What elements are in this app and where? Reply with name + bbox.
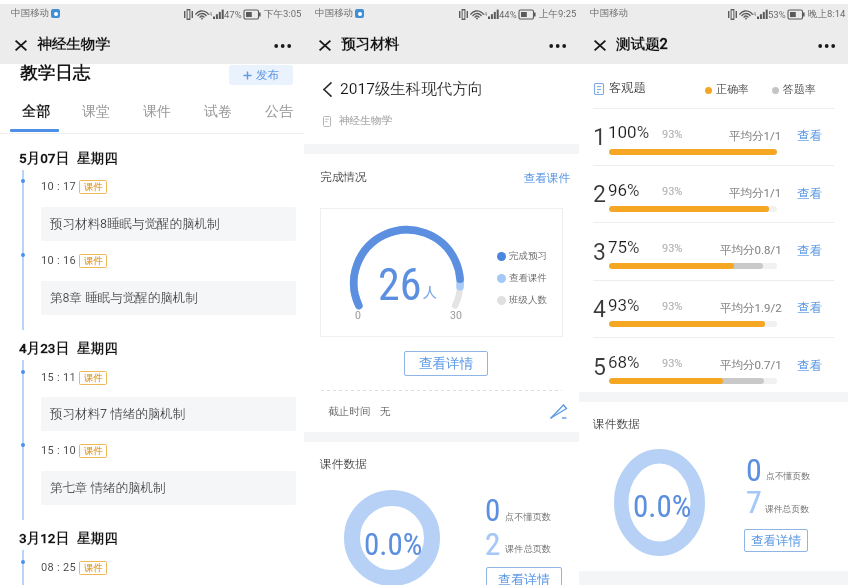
button[interactable]: 课堂 (68, 98, 124, 126)
button[interactable]: 查看 (791, 126, 827, 145)
staticText: 试卷 (204, 103, 232, 121)
staticText: 平均分0.7/1 (720, 358, 782, 372)
button[interactable]: 预习材料7 情绪的脑机制 (41, 397, 296, 431)
button[interactable]: Edit (547, 401, 569, 423)
staticText: 查看 (797, 186, 822, 202)
staticText: 上午9:25 (539, 8, 577, 20)
staticText: 93% (608, 295, 640, 315)
button[interactable]: 课件 (129, 98, 185, 126)
button[interactable]: 试卷 (190, 98, 246, 126)
button[interactable]: Close (313, 34, 336, 57)
staticText: 平均分0.8/1 (720, 243, 782, 257)
button[interactable]: 查看 (791, 184, 827, 203)
staticText: 查看 (797, 300, 822, 316)
staticText: 中国移动 (590, 7, 628, 19)
staticText: 93% (662, 185, 683, 198)
staticText: 10 : 16 (41, 254, 76, 267)
staticText: 0.0% (633, 488, 692, 524)
staticText: 全部 (22, 103, 50, 121)
staticText: 查看详情 (751, 533, 801, 549)
staticText: 4月23日 (19, 340, 70, 357)
staticText: 4 (484, 11, 488, 17)
staticText: 44% (499, 9, 517, 20)
staticText: 第8章 睡眠与觉醒的脑机制 (50, 290, 198, 306)
staticText: 100% (608, 122, 650, 142)
staticText: 课件 (84, 372, 103, 384)
button[interactable]: 全部 (8, 98, 64, 126)
staticText: 截止时间 (328, 405, 371, 418)
button[interactable]: 第8章 睡眠与觉醒的脑机制 (41, 281, 296, 315)
staticText: 68% (608, 352, 640, 372)
button[interactable]: 公告 (251, 98, 307, 126)
staticText: 课件总页数 (505, 543, 551, 555)
staticText: 93% (662, 357, 683, 370)
staticText: 2017级生科现代方向 (340, 79, 484, 99)
staticText: 53% (768, 9, 786, 20)
button[interactable]: Close (9, 34, 32, 57)
staticText: 课件 (84, 562, 103, 574)
button[interactable]: More options (545, 33, 571, 59)
staticText: 4 (593, 296, 606, 323)
staticText: 星期四 (77, 530, 118, 547)
button[interactable]: 查看 (791, 356, 827, 375)
staticText: 查看课件 (524, 171, 570, 185)
staticText: 96% (608, 180, 640, 200)
staticText: 15 : 10 (41, 444, 76, 457)
button[interactable]: 查看 (791, 298, 827, 317)
staticText: 5 (593, 354, 606, 381)
staticText: 平均分1/1 (729, 129, 782, 143)
staticText: 客观题 (609, 80, 646, 95)
button[interactable]: 发布 (229, 65, 293, 85)
staticText: 查看课件 (509, 272, 547, 284)
staticText: 2 (593, 181, 606, 208)
staticText: 正确率 (716, 83, 749, 97)
staticText: 15 : 11 (41, 371, 76, 384)
staticText: 4 (209, 11, 213, 17)
staticText: 课件 (143, 103, 171, 121)
staticText: 1 (593, 124, 606, 151)
staticText: 26 (378, 259, 422, 311)
staticText: 3月12日 (19, 530, 70, 547)
button[interactable]: 第七章 情绪的脑机制 (41, 471, 296, 505)
staticText: 星期四 (77, 150, 118, 167)
staticText: 人 (423, 284, 437, 302)
staticText: 93% (662, 300, 683, 313)
staticText: 星期四 (77, 340, 118, 357)
button[interactable]: 预习材料8睡眠与觉醒的脑机制 (41, 207, 296, 241)
staticText: 点不懂页数 (505, 511, 551, 523)
staticText: 查看 (797, 243, 822, 259)
staticText: 75% (608, 237, 640, 257)
staticText: 查看详情 (498, 571, 550, 585)
button[interactable]: More options (270, 33, 296, 59)
staticText: 课件 (84, 255, 103, 267)
staticText: 班级人数 (509, 294, 547, 306)
staticText: 课件 (84, 181, 103, 193)
staticText: 查看 (797, 128, 822, 144)
staticText: 完成情况 (320, 170, 367, 185)
staticText: 神经生物学 (37, 35, 110, 53)
staticText: 4 (753, 11, 757, 17)
staticText: 93% (662, 242, 683, 255)
staticText: 神经生物学 (339, 114, 392, 127)
staticText: 无 (380, 405, 391, 418)
staticText: 预习材料 (341, 35, 399, 53)
button[interactable]: More options (814, 33, 840, 59)
button[interactable]: Close (588, 34, 611, 57)
staticText: 预习材料8睡眠与觉醒的脑机制 (50, 216, 220, 232)
staticText: 7 (746, 483, 762, 521)
staticText: 点不懂页数 (766, 471, 810, 482)
button[interactable]: 查看详情 (744, 529, 808, 552)
staticText: 第七章 情绪的脑机制 (50, 480, 166, 496)
staticText: 教学日志 (20, 62, 90, 84)
button[interactable]: 查看课件 (518, 169, 570, 187)
staticText: 晚上8:14 (808, 8, 846, 20)
staticText: 预习材料7 情绪的脑机制 (50, 406, 186, 422)
button[interactable]: 查看详情 (486, 567, 562, 585)
button[interactable]: 查看详情 (404, 351, 488, 376)
button[interactable]: 查看 (791, 241, 827, 260)
staticText: 测试题2 (616, 35, 668, 53)
staticText: 0 (355, 309, 361, 321)
staticText: 答题率 (783, 83, 816, 97)
staticText: 中国移动 (11, 7, 49, 19)
staticText: 0 (746, 451, 762, 489)
